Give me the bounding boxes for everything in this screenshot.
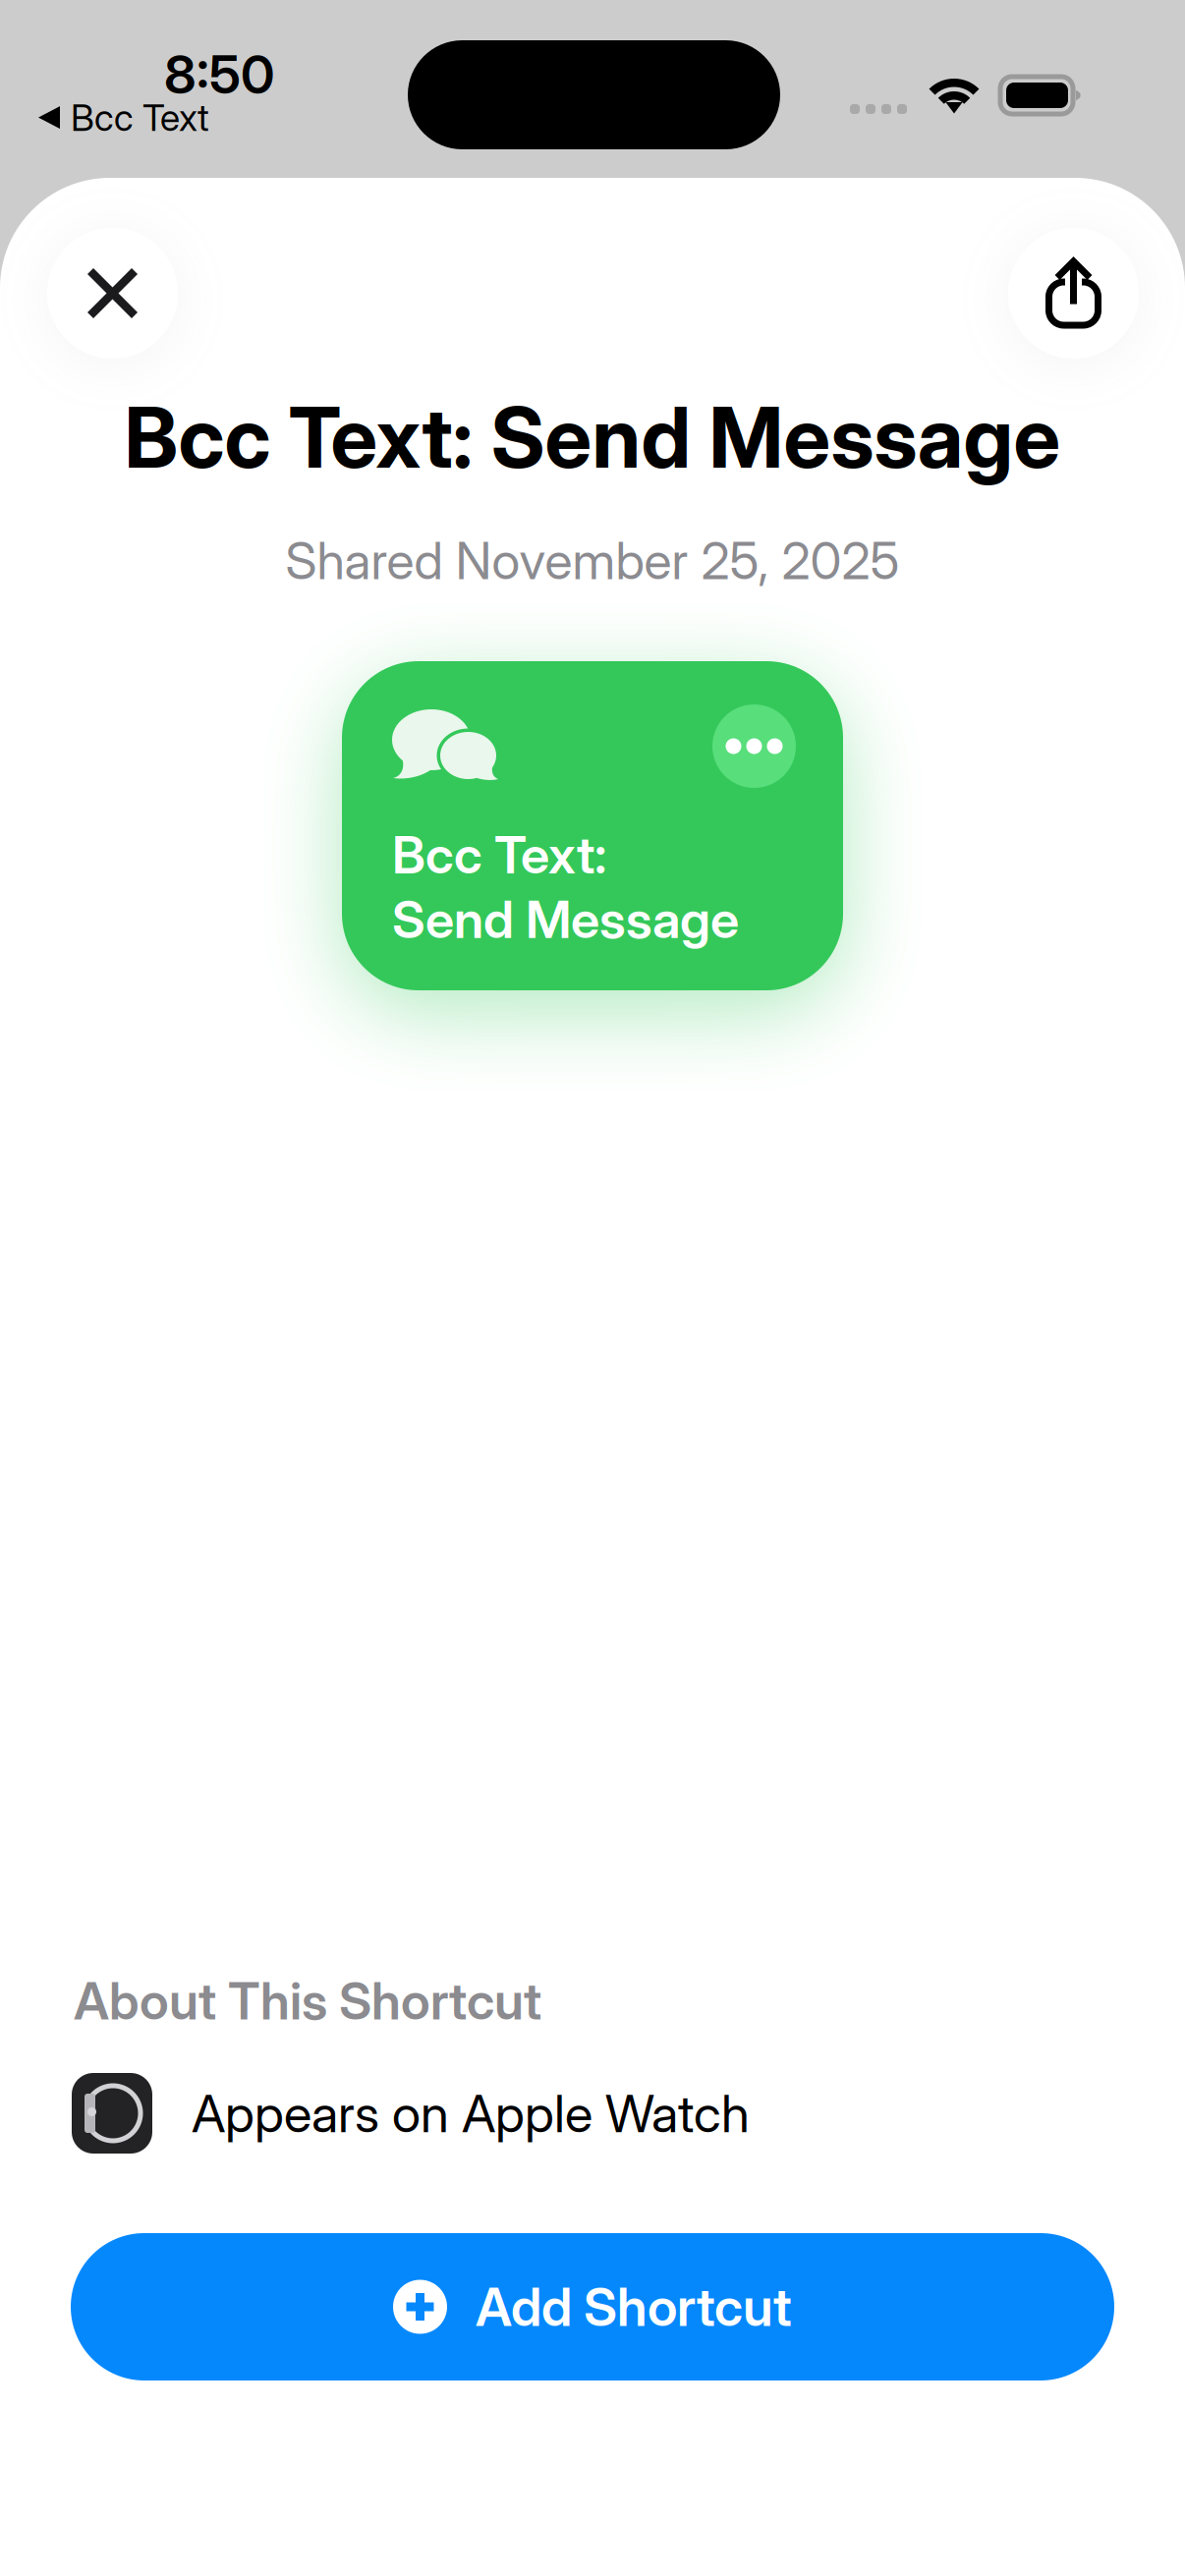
- staticText: Bcc Text: Send Message: [124, 387, 1061, 488]
- button[interactable]: Bcc Text: Send Message: [342, 661, 843, 990]
- button[interactable]: Add Shortcut: [71, 2233, 1114, 2380]
- button[interactable]: Close: [47, 228, 178, 359]
- staticText: About This Shortcut: [74, 1970, 541, 2032]
- staticText: Shared November 25, 2025: [285, 530, 900, 591]
- staticText: Add Shortcut: [476, 2275, 792, 2338]
- staticText: Appears on Apple Watch: [192, 2082, 750, 2145]
- staticText: 8:50: [164, 42, 274, 106]
- staticText: Bcc Text: Send Message: [392, 823, 739, 951]
- staticText: Bcc Text: [71, 95, 209, 140]
- button[interactable]: Share: [1008, 228, 1139, 359]
- button[interactable]: Bcc Text: [38, 95, 209, 140]
